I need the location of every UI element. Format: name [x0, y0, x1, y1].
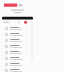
- button[interactable]: List item 1: [0, 26, 35, 32]
- button[interactable]: List item 4: [0, 44, 35, 50]
- button[interactable]: List item 8: [0, 68, 35, 72]
- button[interactable]: List item 7: [0, 62, 35, 68]
- button[interactable]: List item 3: [0, 38, 35, 44]
- button[interactable]: Primary action: [2, 16, 33, 20]
- button[interactable]: List item 6: [0, 56, 35, 62]
- button[interactable]: App logo: [2, 2, 24, 8]
- button[interactable]: List item 2: [0, 32, 35, 38]
- button[interactable]: List item 5: [0, 50, 35, 56]
